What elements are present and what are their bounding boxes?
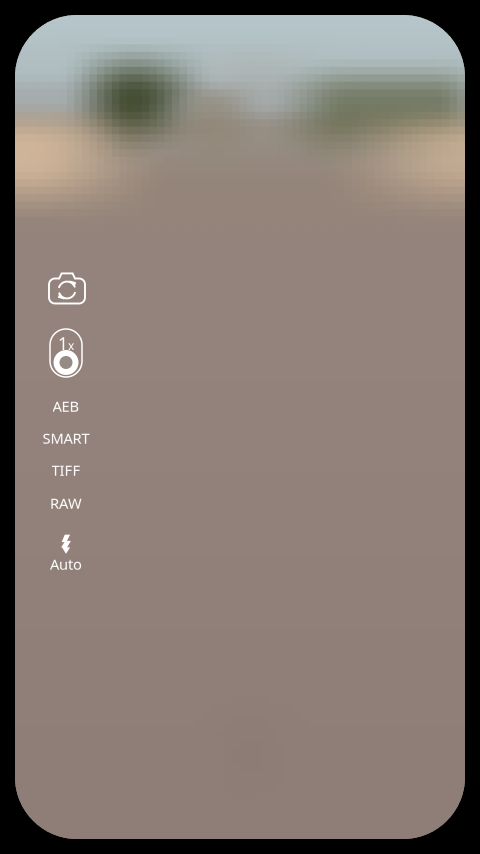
button[interactable]: Zoom 1x <box>30 325 102 381</box>
button[interactable]: TIFF <box>30 454 102 486</box>
staticText: 1x <box>58 332 74 355</box>
button[interactable]: RAW <box>30 487 102 519</box>
staticText: SMART <box>42 428 89 448</box>
button[interactable]: Switch camera <box>31 261 103 313</box>
button[interactable]: Flash Auto <box>30 530 102 578</box>
staticText: AEB <box>52 396 79 416</box>
button[interactable]: AEB <box>30 390 102 422</box>
staticText: RAW <box>50 493 82 513</box>
button[interactable]: SMART <box>30 422 102 454</box>
staticText: TIFF <box>51 460 80 480</box>
staticText: Auto <box>50 554 82 574</box>
